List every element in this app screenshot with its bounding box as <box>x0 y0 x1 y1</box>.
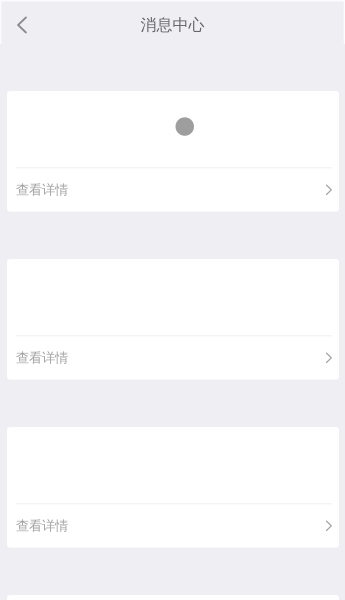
button[interactable]: 查看详情 <box>7 168 339 211</box>
staticText: 查看详情 <box>16 350 68 366</box>
button[interactable]: 查看详情 <box>7 504 339 547</box>
button[interactable]: 查看详情 <box>7 336 339 379</box>
staticText: 消息中心 <box>140 15 204 35</box>
button[interactable]: Back <box>0 3 44 47</box>
staticText: 查看详情 <box>16 182 68 198</box>
staticText: 查看详情 <box>16 518 68 534</box>
